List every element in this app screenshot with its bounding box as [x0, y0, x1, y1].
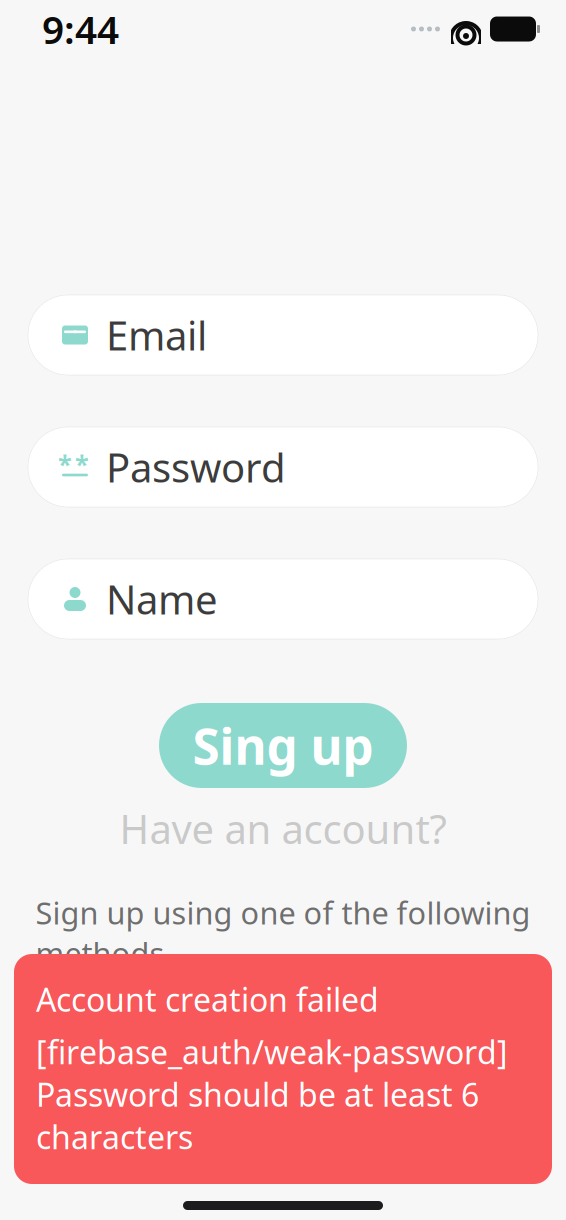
button[interactable]: Sing up [159, 703, 407, 788]
button[interactable]: Name [28, 559, 538, 639]
staticText: Name [106, 572, 218, 625]
button[interactable]: Sign up with Facebook [371, 1001, 429, 1059]
staticText: Account creation failed [36, 978, 379, 1020]
staticText: * [75, 447, 89, 480]
staticText: [firebase_auth/weak-password] Password s… [36, 1030, 508, 1158]
button[interactable]: Back to login [149, 1087, 417, 1141]
staticText: Back to login [149, 1087, 417, 1141]
staticText: * [58, 447, 72, 480]
button[interactable]: Email [28, 295, 538, 375]
staticText: Have an account? [119, 802, 446, 855]
staticText: Email [106, 308, 207, 361]
staticText: 9:44 [42, 3, 119, 55]
staticText: Sing up [192, 713, 373, 778]
button[interactable]: * [28, 427, 538, 507]
staticText: Sign up using one of the following metho… [35, 892, 530, 973]
staticText: f [389, 992, 410, 1063]
staticText: Password [106, 440, 286, 493]
button[interactable]: Have an account? [105, 794, 460, 863]
button[interactable]: Sign up with Google [137, 1001, 195, 1059]
button[interactable]: Sign up with Twitter [254, 1001, 312, 1059]
